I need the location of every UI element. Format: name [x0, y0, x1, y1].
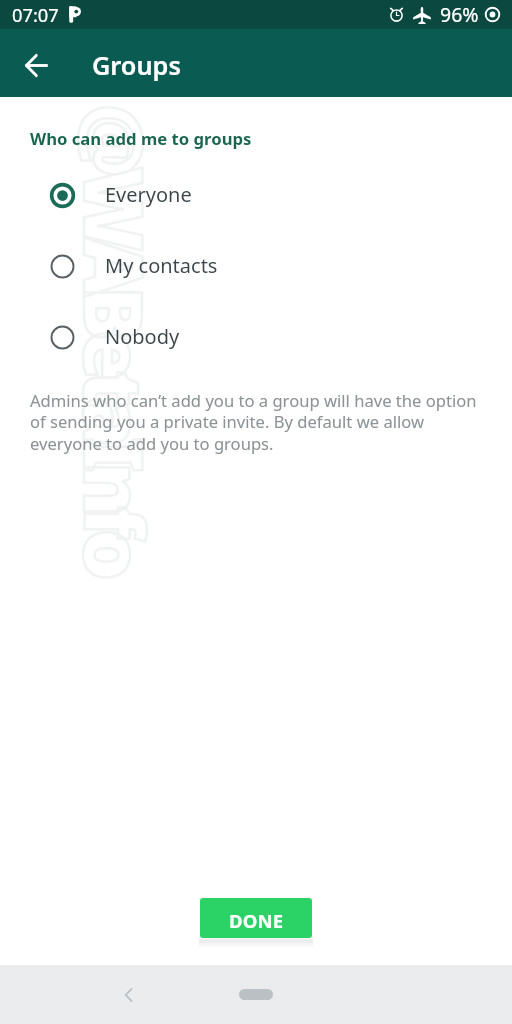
- staticText: Who can add me to groups: [30, 127, 252, 150]
- staticText: DONE: [229, 908, 284, 933]
- button[interactable]: DONE: [200, 898, 312, 938]
- staticText: Everyone: [105, 181, 192, 208]
- staticText: Admins who can’t add you to a group will…: [30, 389, 479, 455]
- staticText: My contacts: [105, 252, 218, 279]
- button[interactable]: Home: [239, 989, 273, 1000]
- staticText: 96%: [440, 1, 479, 28]
- staticText: Nobody: [105, 323, 180, 350]
- staticText: Groups: [92, 48, 181, 82]
- button[interactable]: Everyone: [0, 160, 512, 231]
- staticText: 07:07: [12, 2, 59, 27]
- button[interactable]: Nobody: [0, 302, 512, 373]
- button[interactable]: Back: [14, 41, 59, 86]
- button[interactable]: My contacts: [0, 231, 512, 302]
- button[interactable]: Back: [109, 975, 149, 1015]
